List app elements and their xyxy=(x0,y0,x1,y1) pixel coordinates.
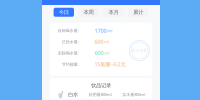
staticText: 实际喝水量: xyxy=(58,50,79,56)
staticText: ml xyxy=(104,39,109,44)
staticText: 1S能量~0.2元 xyxy=(94,61,125,68)
staticText: ml xyxy=(104,50,109,56)
staticText: 600 xyxy=(94,49,103,57)
staticText: 累计 xyxy=(133,9,143,16)
staticText: 饮水达标 xyxy=(131,48,147,53)
staticText: 今日 xyxy=(59,9,69,16)
staticText: 实水量800ml xyxy=(122,92,145,97)
staticText: ml xyxy=(107,28,112,33)
button[interactable]: 今日 xyxy=(54,8,74,17)
button[interactable]: 白水 xyxy=(50,90,152,99)
staticText: 1700 xyxy=(94,27,106,34)
staticText: 目标喝水量: xyxy=(58,28,79,33)
button[interactable]: 本周 xyxy=(78,8,99,17)
staticText: 600 xyxy=(94,38,103,45)
staticText: 饮品记录 xyxy=(91,82,111,89)
staticText: 白水 xyxy=(68,91,78,98)
staticText: 饮用量800ml xyxy=(89,92,112,97)
staticText: 已饮水量: xyxy=(62,39,79,44)
staticText: 节约能量: xyxy=(62,61,79,67)
button[interactable]: 本月 xyxy=(103,8,124,17)
staticText: 本月 xyxy=(108,9,118,16)
button[interactable]: 累计 xyxy=(128,8,148,17)
staticText: 本周 xyxy=(84,9,94,16)
